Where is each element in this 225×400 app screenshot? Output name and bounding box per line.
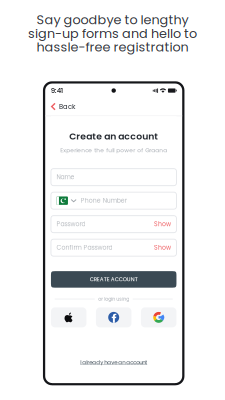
staticText: Confirm Password xyxy=(56,243,112,252)
button[interactable]: Password xyxy=(51,216,176,233)
staticText: Say goodbye to lengthy xyxy=(36,11,188,29)
button[interactable]: CREATE ACCOUNT xyxy=(51,271,176,288)
staticText: Back xyxy=(59,102,75,111)
staticText: Password xyxy=(56,220,85,228)
staticText: Show xyxy=(154,220,171,228)
staticText: Show xyxy=(154,243,171,252)
button[interactable]: Back xyxy=(45,97,182,115)
button[interactable]: Confirm Password xyxy=(51,239,176,256)
staticText: hassle-free registration xyxy=(36,38,188,56)
button[interactable]: Sign up with Facebook xyxy=(96,307,131,327)
staticText: Experience the full power of Graana xyxy=(60,146,167,154)
staticText: or login using xyxy=(98,296,129,302)
staticText: Create an account xyxy=(69,130,158,143)
button[interactable]: Phone Number xyxy=(51,192,176,209)
button[interactable]: I already have an account xyxy=(80,358,147,366)
staticText: Phone Number xyxy=(81,196,127,205)
button[interactable]: Name xyxy=(51,169,176,186)
staticText: 9:41 xyxy=(51,86,63,95)
staticText: Name xyxy=(56,173,74,181)
button[interactable]: Sign up with Google xyxy=(141,307,176,327)
button[interactable]: Sign up with Apple xyxy=(51,307,86,327)
staticText: sign-up forms and hello to xyxy=(28,24,197,42)
staticText: I already have an account xyxy=(80,358,147,366)
staticText: CREATE ACCOUNT xyxy=(90,276,138,283)
